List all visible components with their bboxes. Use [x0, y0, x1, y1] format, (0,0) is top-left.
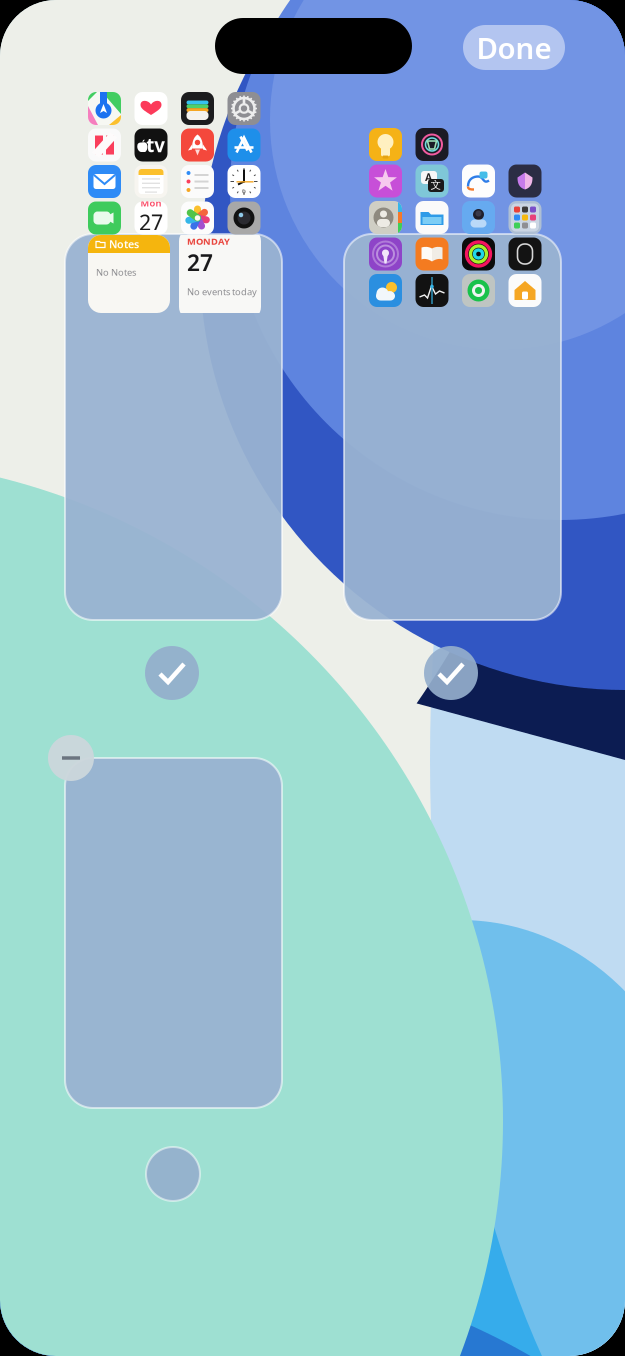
staticText: No events today	[187, 286, 257, 298]
staticText: No Notes	[96, 266, 136, 278]
staticText: 6	[242, 187, 246, 195]
staticText: 文	[430, 178, 441, 191]
staticText: tv	[146, 133, 165, 157]
staticText: Done	[476, 28, 551, 67]
staticText: Notes	[109, 237, 139, 251]
staticText: 27	[139, 208, 163, 236]
staticText: Mon	[140, 197, 161, 209]
button[interactable]: Done	[463, 25, 565, 70]
staticText: A	[425, 170, 432, 184]
staticText: MONDAY	[187, 235, 230, 247]
staticText: 27	[187, 247, 213, 277]
